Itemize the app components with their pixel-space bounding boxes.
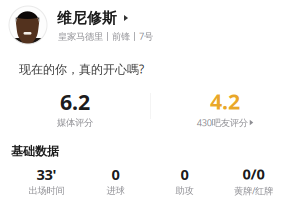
staticText: 33' — [36, 164, 56, 184]
staticText: 0 — [180, 164, 188, 184]
staticText: 进球 — [106, 185, 124, 196]
staticText: 媒体评分 — [57, 117, 93, 128]
staticText: 现在的你，真的开心嗎? — [19, 61, 144, 77]
staticText: 4.2 — [210, 87, 240, 115]
staticText: 基础数据 — [11, 144, 59, 159]
staticText: 6.2 — [60, 87, 90, 116]
button[interactable]: 4.2 — [150, 87, 300, 129]
staticText: 助攻 — [175, 185, 193, 196]
staticText: 430吧友评分 — [197, 116, 248, 129]
staticText: 维尼修斯 — [57, 9, 117, 27]
staticText: 黄牌/红牌 — [234, 184, 273, 197]
staticText: 出场时间 — [28, 185, 64, 196]
staticText: 皇家马德里丨前锋丨7号 — [58, 30, 153, 42]
staticText: 0/0 — [242, 164, 264, 183]
button[interactable]: 维尼修斯 — [0, 0, 300, 52]
staticText: 0 — [111, 164, 119, 184]
button[interactable]: 6.2 — [0, 87, 150, 128]
